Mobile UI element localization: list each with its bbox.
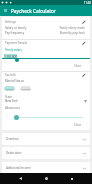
staticText: Single: [6, 87, 14, 90]
staticText: Yearly salary: [5, 48, 22, 52]
staticText: Close: [74, 123, 81, 127]
staticText: 1,00,000: [4, 54, 18, 59]
button[interactable]: Single: [4, 86, 15, 91]
button[interactable]: Edit settings: [80, 18, 87, 25]
staticText: Close: [74, 64, 81, 68]
staticText: State: [5, 95, 12, 99]
staticText: Paycheck Calculator: [11, 8, 56, 14]
staticText: Payment Details: [5, 41, 28, 45]
button[interactable]: Home: [42, 174, 51, 183]
button[interactable]: Edit tax info: [80, 71, 87, 78]
button[interactable]: Married: [20, 86, 31, 91]
button[interactable]: Deductions: [2, 147, 90, 159]
staticText: New York: [5, 99, 18, 103]
staticText: Biweekly paycheck: [59, 31, 85, 35]
staticText: 1: [6, 115, 8, 118]
staticText: Additional Income: [6, 166, 31, 170]
staticText: Allowances: [5, 106, 21, 110]
staticText: Yearly salary mode: [59, 26, 85, 30]
button[interactable]: Menu: [2, 7, 9, 14]
staticText: Salary or hourly: [5, 26, 27, 30]
button[interactable]: Overtime: [2, 133, 90, 145]
button[interactable]: Recent apps: [67, 174, 76, 183]
staticText: Pay frequency: [5, 31, 25, 35]
button[interactable]: Edit payment details: [80, 39, 87, 46]
staticText: Married: [21, 87, 31, 90]
button[interactable]: Additional Income: [2, 162, 90, 174]
staticText: Deductions: [6, 151, 22, 155]
staticText: 11:20: [84, 1, 91, 5]
staticText: Tax Info: [5, 73, 16, 77]
staticText: Marital Status: [5, 79, 24, 83]
button[interactable]: Back: [16, 174, 25, 183]
staticText: Overtime: [6, 137, 19, 141]
staticText: Settings: [5, 20, 16, 24]
